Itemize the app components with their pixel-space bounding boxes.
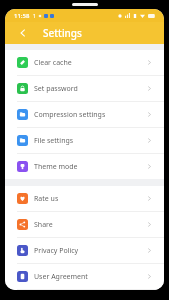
button[interactable]: Share bbox=[5, 212, 164, 237]
staticText: Theme mode bbox=[34, 162, 147, 172]
staticText: 11:58 bbox=[14, 12, 30, 20]
staticText: Set password bbox=[34, 84, 147, 94]
staticText: Compression settings bbox=[34, 110, 147, 120]
staticText: Clear cache bbox=[34, 58, 147, 68]
staticText: User Agreement bbox=[34, 272, 147, 282]
button[interactable]: Compression settings bbox=[5, 102, 164, 127]
button[interactable]: Back bbox=[15, 25, 31, 41]
button[interactable]: Set password bbox=[5, 76, 164, 101]
button[interactable]: File settings bbox=[5, 128, 164, 153]
button[interactable]: Theme mode bbox=[5, 154, 164, 179]
staticText: Privacy Policy bbox=[34, 246, 147, 256]
staticText: Rate us bbox=[34, 194, 147, 204]
staticText: Settings bbox=[43, 26, 82, 40]
button[interactable]: Rate us bbox=[5, 186, 164, 211]
staticText: Share bbox=[34, 220, 147, 230]
staticText: File settings bbox=[34, 136, 147, 146]
staticText: 1 bbox=[33, 13, 36, 20]
button[interactable]: User Agreement bbox=[5, 264, 164, 289]
button[interactable]: Privacy Policy bbox=[5, 238, 164, 263]
button[interactable]: Clear cache bbox=[5, 50, 164, 75]
